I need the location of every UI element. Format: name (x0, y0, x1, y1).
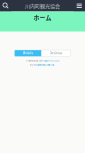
button[interactable]: Powered by (26, 59, 59, 62)
staticText: 川内町観光協会 (25, 2, 60, 9)
staticText: Mobile (22, 51, 33, 55)
staticText: WPtouch Pro 3.x.x (39, 59, 59, 62)
button[interactable]: Search (0, 0, 11, 11)
button[interactable]: Menu (73, 0, 85, 11)
staticText: Powered by (26, 59, 38, 62)
staticText: ホーム (33, 13, 51, 21)
button[interactable]: Desktop (41, 50, 70, 56)
staticText: BraveNewCode Inc. (34, 64, 55, 67)
button[interactable]: Mobile (14, 50, 41, 56)
button[interactable]: By (30, 64, 55, 67)
staticText: Desktop (49, 51, 62, 55)
staticText: By (30, 64, 33, 67)
